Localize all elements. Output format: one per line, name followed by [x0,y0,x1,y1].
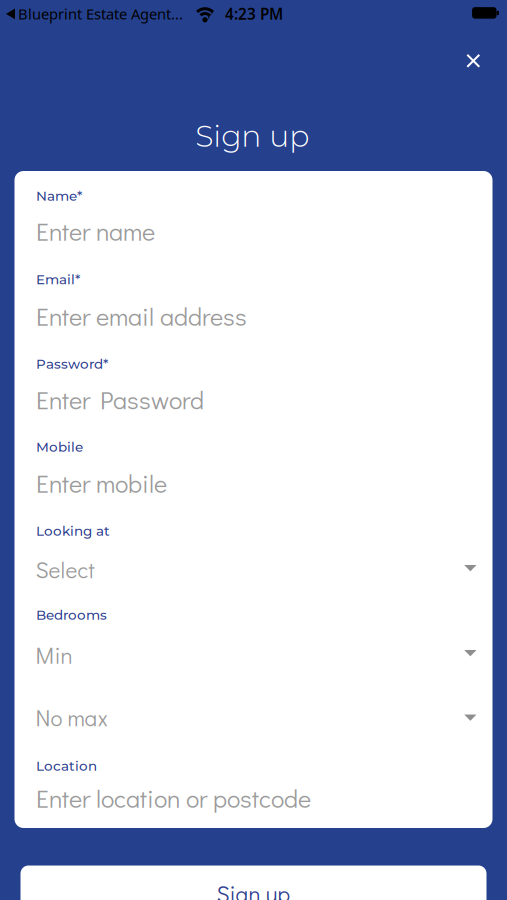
button[interactable]: Close [466,53,481,68]
staticText: Bedrooms [36,607,107,623]
staticText: Select [35,555,94,584]
staticText: Enter location or postcode [36,782,311,814]
button[interactable]: Min [35,638,476,672]
staticText: Sign up [216,879,290,900]
staticText: Email* [36,271,80,288]
staticText: Location [36,758,97,774]
staticText: No max [35,703,107,732]
staticText: Mobile [36,439,83,455]
button[interactable]: Back to Blueprint Estate Agent [6,4,183,24]
staticText: Enter Password [36,383,204,416]
staticText: Looking at [36,523,110,539]
staticText: Enter email address [36,300,247,332]
button[interactable]: Enter mobile [36,466,471,500]
staticText: Enter mobile [36,467,167,499]
staticText: Password* [36,356,108,372]
staticText: Enter name [36,215,155,247]
button[interactable]: Select [35,552,476,586]
staticText: Blueprint Estate Agent... [18,4,183,24]
staticText: 4:23 PM [225,3,283,24]
staticText: Min [35,640,72,670]
button[interactable]: Enter email address [36,299,471,333]
button[interactable]: Sign up [20,865,486,900]
button[interactable]: No max [35,700,476,734]
button[interactable]: Enter Password [36,382,471,416]
staticText: Sign up [195,118,309,154]
button[interactable]: Enter location or postcode [36,781,471,815]
button[interactable]: Enter name [36,214,471,248]
staticText: Name* [36,188,82,204]
